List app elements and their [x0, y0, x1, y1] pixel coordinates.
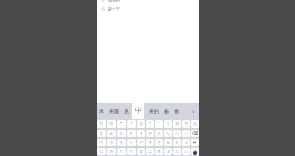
staticText: ㄇ: [99, 140, 104, 146]
staticText: ˋ: [131, 121, 133, 127]
button[interactable]: 屮: [135, 103, 142, 119]
button[interactable]: ㄅ: [97, 120, 106, 128]
button[interactable]: ㄨ: [182, 139, 190, 146]
button[interactable]: ㄕ: [137, 139, 145, 146]
button[interactable]: ㄈ: [97, 148, 106, 155]
button[interactable]: 美麗: [109, 103, 119, 119]
staticText: ㄋ: [109, 140, 114, 146]
button[interactable]: ㄣ: [173, 130, 181, 137]
staticText: ㄟ: [166, 131, 171, 137]
staticText: ㄎ: [119, 140, 124, 146]
button[interactable]: ㄘ: [146, 139, 154, 146]
button[interactable]: 說一下: [101, 5, 199, 12]
staticText: ㄓ: [139, 121, 144, 127]
staticText: ㄏ: [119, 149, 124, 155]
staticText: ㄦ: [193, 121, 198, 127]
button[interactable]: ㄟ: [164, 130, 172, 137]
staticText: ∨: [192, 109, 195, 114]
button[interactable]: 見: [124, 103, 129, 119]
button[interactable]: ㄡ: [164, 148, 172, 155]
staticText: ㄧ: [184, 131, 189, 137]
staticText: 與我們: [108, 0, 120, 2]
staticText: 見: [124, 108, 129, 114]
button[interactable]: 秘: [164, 103, 169, 119]
staticText: ㄘ: [148, 140, 153, 146]
staticText: 屮: [135, 107, 142, 115]
staticText: ㄖ: [139, 149, 144, 155]
button[interactable]: ↵: [191, 139, 199, 146]
staticText: ㄗ: [148, 131, 153, 137]
button[interactable]: ㄩ: [182, 148, 190, 155]
staticText: 美麗: [109, 108, 119, 114]
button[interactable]: ˋ: [127, 120, 136, 128]
button[interactable]: ㄉ: [107, 120, 116, 128]
button[interactable]: ㄚ: [164, 120, 172, 128]
staticText: ˙: [158, 121, 160, 127]
button[interactable]: 會: [174, 103, 179, 119]
staticText: 會: [174, 108, 179, 114]
button[interactable]: 與我們: [101, 0, 199, 2]
button[interactable]: ㄛ: [155, 130, 163, 137]
button[interactable]: ㄓ: [137, 120, 145, 128]
button[interactable]: ㄙ: [146, 148, 154, 155]
staticText: ㄍ: [119, 131, 124, 137]
staticText: ㄥ: [175, 149, 180, 155]
button[interactable]: ㄍ: [117, 130, 126, 137]
button[interactable]: Emoji: [193, 151, 197, 155]
staticText: ㄅ: [99, 121, 104, 127]
button[interactable]: ㄥ: [173, 148, 181, 155]
staticText: 美的: [149, 108, 159, 114]
staticText: ㄡ: [166, 149, 171, 155]
staticText: ㄛ: [157, 131, 162, 137]
staticText: ㄚ: [166, 121, 171, 127]
button[interactable]: 米: [99, 103, 104, 119]
staticText: ㄝ: [157, 149, 162, 155]
staticText: ㄌ: [109, 149, 114, 155]
button[interactable]: ㄦ: [191, 120, 199, 128]
button[interactable]: Expand candidates: [189, 103, 197, 119]
staticText: ㄐ: [129, 131, 134, 137]
button[interactable]: ？: [191, 148, 199, 155]
button[interactable]: ㄢ: [182, 120, 190, 128]
button[interactable]: ㄠ: [164, 139, 172, 146]
staticText: ㄤ: [175, 140, 180, 146]
button[interactable]: ㄗ: [146, 130, 154, 137]
button[interactable]: ㄐ: [127, 130, 136, 137]
button[interactable]: ㄋ: [107, 139, 116, 146]
button[interactable]: ㄎ: [117, 139, 126, 146]
staticText: ˊ: [149, 121, 151, 127]
button[interactable]: ㄜ: [155, 139, 163, 146]
button[interactable]: ㄔ: [137, 130, 145, 137]
button[interactable]: ㄞ: [173, 120, 181, 128]
staticText: ㄔ: [139, 131, 144, 137]
button[interactable]: ㄖ: [137, 148, 145, 155]
button[interactable]: ㄧ: [182, 130, 190, 137]
staticText: ⌫: [192, 131, 199, 136]
staticText: ㄞ: [175, 121, 180, 127]
button[interactable]: ㄑ: [127, 139, 136, 146]
button[interactable]: ㄏ: [117, 148, 126, 155]
button[interactable]: ˙: [155, 120, 163, 128]
button[interactable]: ˇ: [117, 120, 126, 128]
button[interactable]: ㄌ: [107, 148, 116, 155]
staticText: ㄒ: [129, 149, 134, 155]
staticText: ˇ: [120, 121, 123, 127]
staticText: ㄨ: [184, 140, 189, 146]
staticText: ㄉ: [109, 121, 114, 127]
button[interactable]: ㄒ: [127, 148, 136, 155]
staticText: ㄠ: [166, 140, 171, 146]
button[interactable]: ⌫: [191, 130, 199, 137]
staticText: ㄩ: [184, 149, 189, 155]
button[interactable]: ˊ: [146, 120, 154, 128]
button[interactable]: ㄆ: [97, 130, 106, 137]
button[interactable]: ㄇ: [97, 139, 106, 146]
button[interactable]: 美的: [149, 103, 159, 119]
staticText: ㄣ: [175, 131, 180, 137]
staticText: ↵: [193, 140, 197, 145]
staticText: ㄢ: [184, 121, 189, 127]
staticText: ㄑ: [129, 140, 134, 146]
staticText: ㄈ: [99, 149, 104, 155]
button[interactable]: ㄊ: [107, 130, 116, 137]
button[interactable]: ㄤ: [173, 139, 181, 146]
button[interactable]: ㄝ: [155, 148, 163, 155]
